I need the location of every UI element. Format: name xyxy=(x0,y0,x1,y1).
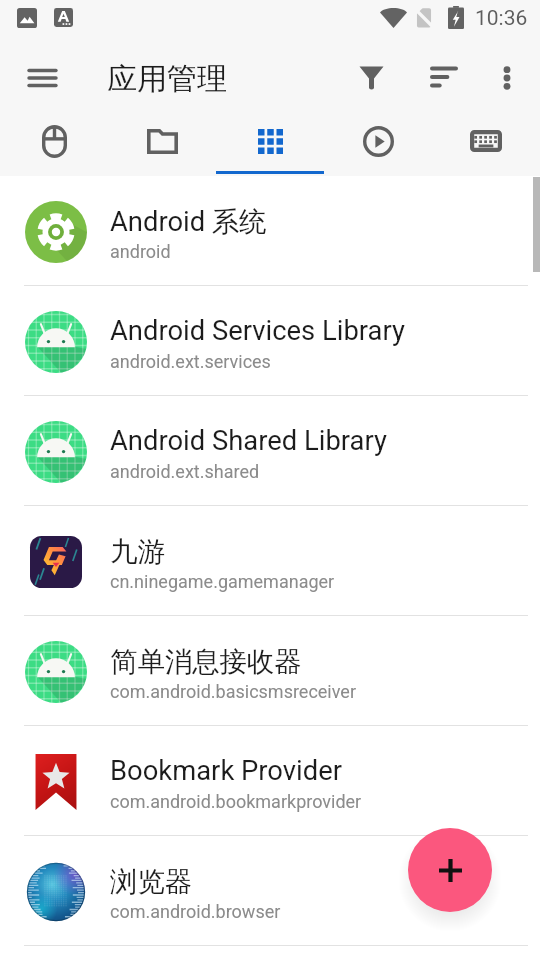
button[interactable]: Keyboard xyxy=(432,118,540,176)
staticText: 浏览器 xyxy=(110,865,193,900)
button[interactable]: Android Services Library xyxy=(0,286,540,396)
button[interactable]: Sort xyxy=(420,53,468,101)
button[interactable]: 简单消息接收器 xyxy=(0,616,540,726)
button[interactable]: Android 系统 xyxy=(0,176,540,286)
staticText: com.android.browser xyxy=(110,901,281,922)
staticText: 10:36 xyxy=(475,6,528,31)
button[interactable]: Navigation menu xyxy=(14,50,70,106)
staticText: Bookmark Provider xyxy=(110,755,342,787)
button[interactable]: 九游 xyxy=(0,506,540,616)
button[interactable]: Media xyxy=(324,118,432,176)
button[interactable]: Filter xyxy=(347,54,395,102)
button[interactable]: Bookmark Provider xyxy=(0,726,540,836)
button[interactable]: Android Shared Library xyxy=(0,396,540,506)
staticText: Android Shared Library xyxy=(110,425,387,457)
staticText: 九游 xyxy=(110,535,165,570)
button[interactable]: More options xyxy=(483,54,531,102)
staticText: com.android.bookmarkprovider xyxy=(110,791,362,812)
staticText: Android Services Library xyxy=(110,315,405,347)
staticText: 应用管理 xyxy=(107,60,227,98)
staticText: com.android.basicsmsreceiver xyxy=(110,681,356,702)
staticText: cn.ninegame.gamemanager xyxy=(110,571,335,592)
button[interactable]: 浏览器 xyxy=(0,836,540,946)
button[interactable]: Devices xyxy=(0,118,108,176)
staticText: android xyxy=(110,241,171,262)
button[interactable]: Add xyxy=(408,828,492,912)
staticText: android.ext.services xyxy=(110,351,271,372)
staticText: Android 系统 xyxy=(110,205,267,240)
staticText: android.ext.shared xyxy=(110,461,260,482)
button[interactable]: Apps xyxy=(216,118,324,176)
button[interactable]: Files xyxy=(108,118,216,176)
staticText: 简单消息接收器 xyxy=(110,645,302,680)
